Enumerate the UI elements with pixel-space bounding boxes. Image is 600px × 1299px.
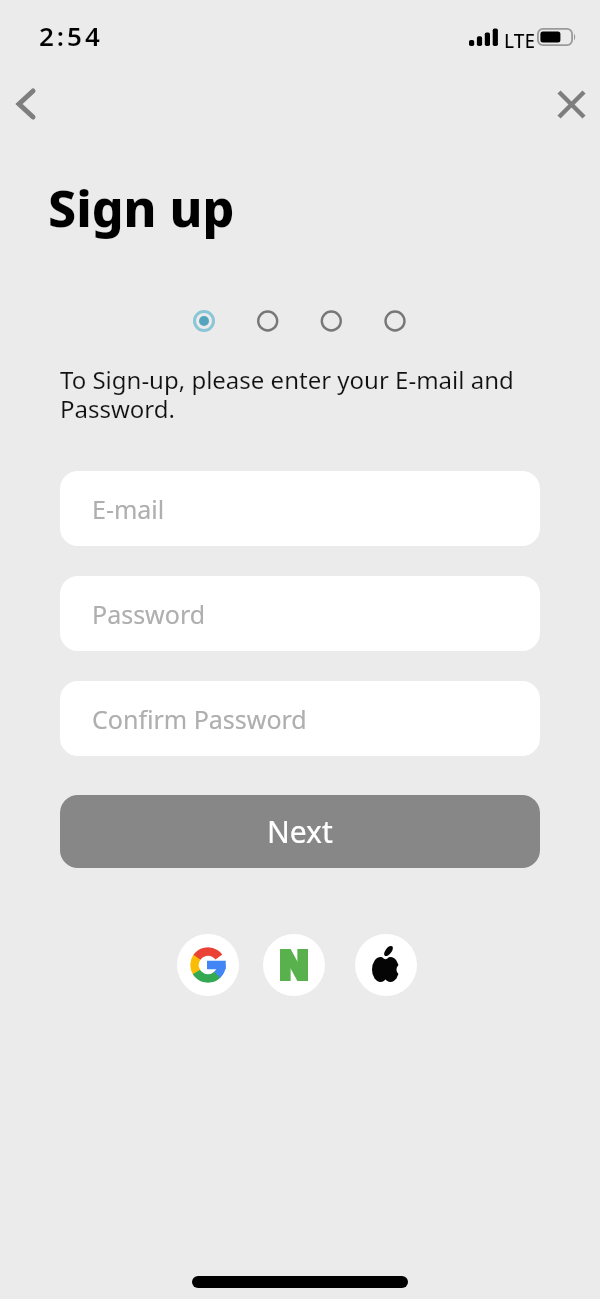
- staticText: 2:54: [39, 18, 103, 53]
- button[interactable]: Password: [60, 576, 540, 651]
- staticText: Password: [92, 597, 206, 631]
- button[interactable]: Next: [60, 795, 540, 868]
- button[interactable]: [6, 84, 46, 124]
- staticText: LTE: [504, 28, 536, 54]
- button[interactable]: [355, 934, 417, 996]
- staticText: Sign up: [48, 174, 235, 242]
- staticText: To Sign-up, please enter your E-mail and…: [60, 363, 514, 425]
- staticText: E-mail: [92, 492, 165, 526]
- button[interactable]: [263, 934, 325, 996]
- button[interactable]: Confirm Password: [60, 681, 540, 756]
- staticText: Confirm Password: [92, 702, 307, 736]
- button[interactable]: E-mail: [60, 471, 540, 546]
- button[interactable]: [551, 84, 591, 124]
- button[interactable]: [177, 934, 239, 996]
- staticText: Next: [267, 811, 333, 852]
